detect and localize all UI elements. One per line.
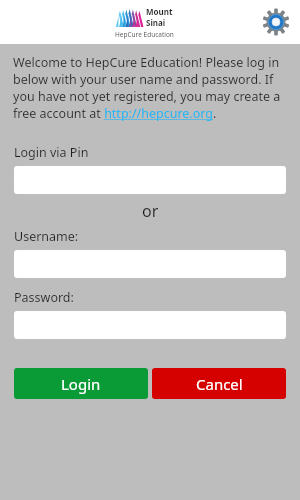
button[interactable]: Login — [14, 368, 148, 399]
staticText: Welcome to HepCure Education! Please log… — [13, 54, 288, 122]
staticText: or — [142, 200, 159, 222]
staticText: Username: — [14, 228, 79, 245]
button[interactable]: Cancel — [152, 368, 286, 399]
staticText: Cancel — [196, 374, 243, 394]
staticText: Login via Pin — [14, 144, 89, 161]
staticText: Login — [61, 374, 101, 394]
button[interactable]: Settings — [260, 6, 292, 38]
staticText: Sinai — [146, 17, 166, 28]
staticText: Password: — [14, 289, 74, 306]
staticText: HepCure Education — [115, 30, 174, 39]
staticText: Mount — [146, 6, 173, 17]
